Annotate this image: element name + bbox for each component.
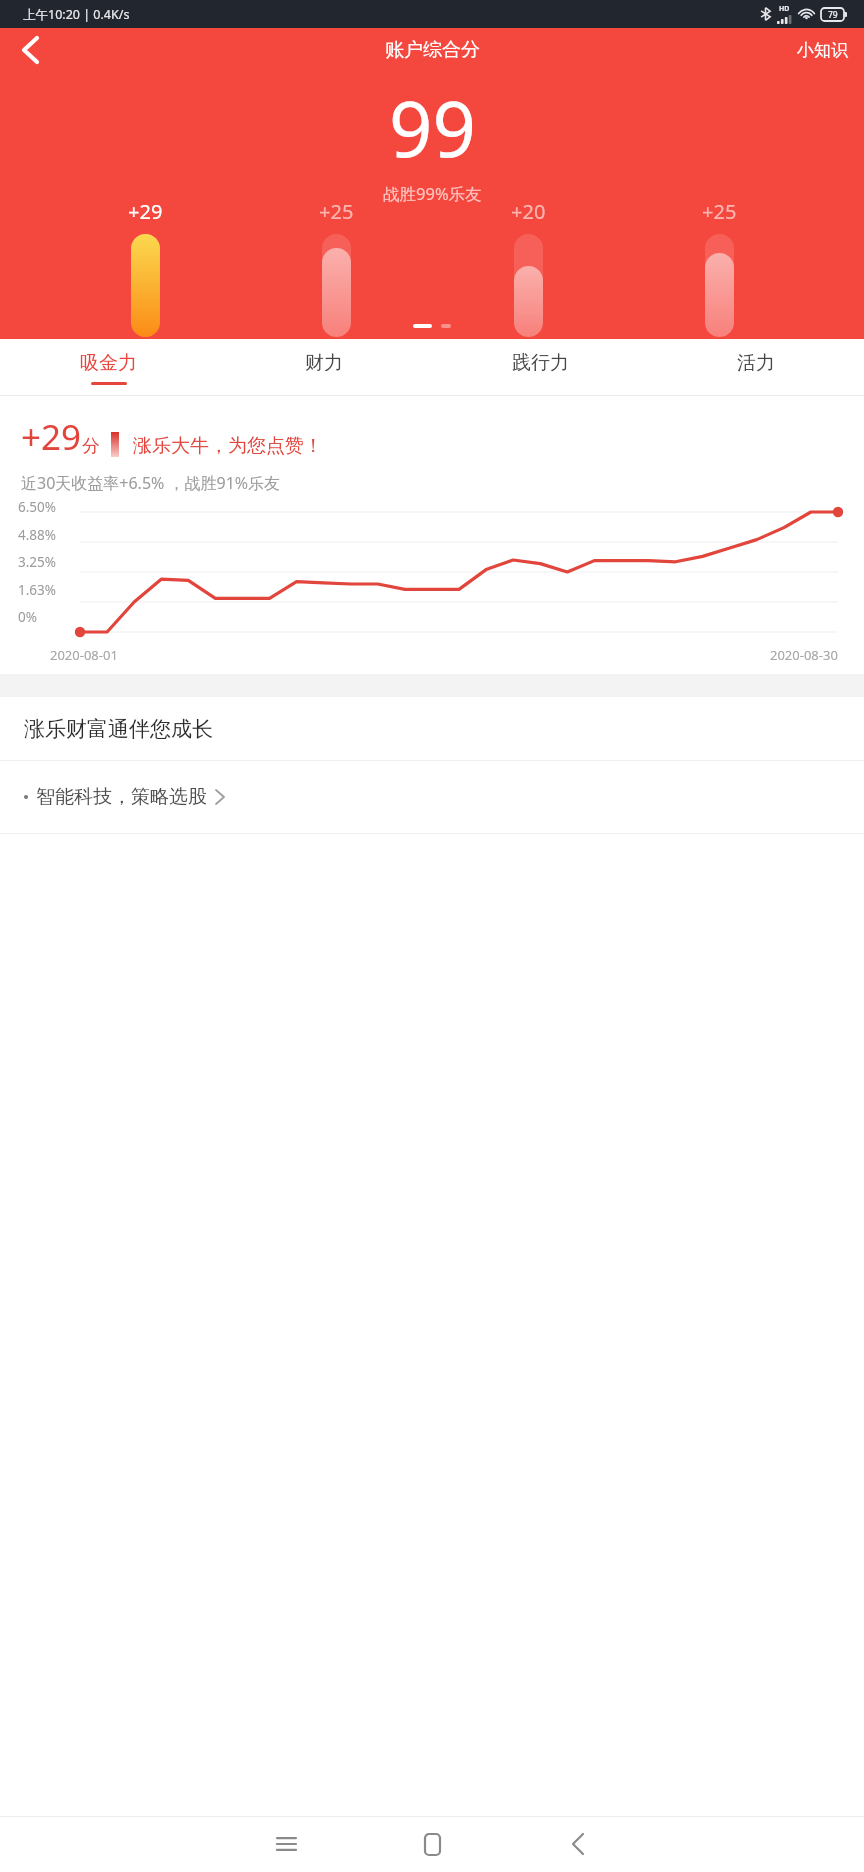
button[interactable]: Back [536,1816,620,1872]
staticText: 上午10:20 | 0.4K/s [23,6,130,23]
staticText: 4.88% [18,526,57,544]
button[interactable]: +20 [482,198,574,339]
staticText: 99 [389,76,476,180]
staticText: +25 [702,198,737,225]
staticText: +25 [319,198,354,225]
staticText: 近30天收益率+6.5% ，战胜91%乐友 [21,472,281,494]
staticText: +29 [21,413,82,461]
staticText: 2020-08-30 [770,646,838,664]
button[interactable]: +29 [99,198,191,339]
staticText: 1.63% [18,581,57,599]
button[interactable]: 财力 [216,339,432,396]
button[interactable]: 践行力 [432,339,648,396]
staticText: 0% [18,608,37,626]
button[interactable]: 活力 [648,339,864,396]
staticText: 涨乐财富通伴您成长 [24,716,213,742]
button[interactable]: 涨乐财富通伴您成长 [0,697,864,760]
staticText: +29 [128,198,163,225]
staticText: 账户综合分 [385,38,480,62]
staticText: 3.25% [18,553,57,571]
button[interactable]: +25 [673,198,765,339]
button[interactable]: 智能科技，策略选股 [0,761,864,833]
staticText: 79 [828,9,838,21]
staticText: HD [779,4,790,14]
staticText: +20 [511,198,546,225]
staticText: 活力 [737,351,775,375]
button[interactable]: 吸金力 [0,339,216,396]
staticText: 2020-08-01 [50,646,118,664]
button[interactable]: Recent apps [244,1816,328,1872]
staticText: 吸金力 [80,351,137,375]
staticText: 践行力 [512,351,569,375]
button[interactable]: Back [8,28,52,72]
staticText: 分 [82,435,100,458]
staticText: 6.50% [18,498,57,516]
staticText: 战胜99%乐友 [383,182,482,205]
staticText: 财力 [305,351,343,375]
staticText: 小知识 [797,40,848,61]
button[interactable]: Home [390,1816,474,1872]
staticText: 智能科技，策略选股 [36,785,207,809]
button[interactable]: 小知识 [781,32,864,69]
button[interactable]: +25 [290,198,382,339]
staticText: 涨乐大牛，为您点赞！ [133,434,323,458]
